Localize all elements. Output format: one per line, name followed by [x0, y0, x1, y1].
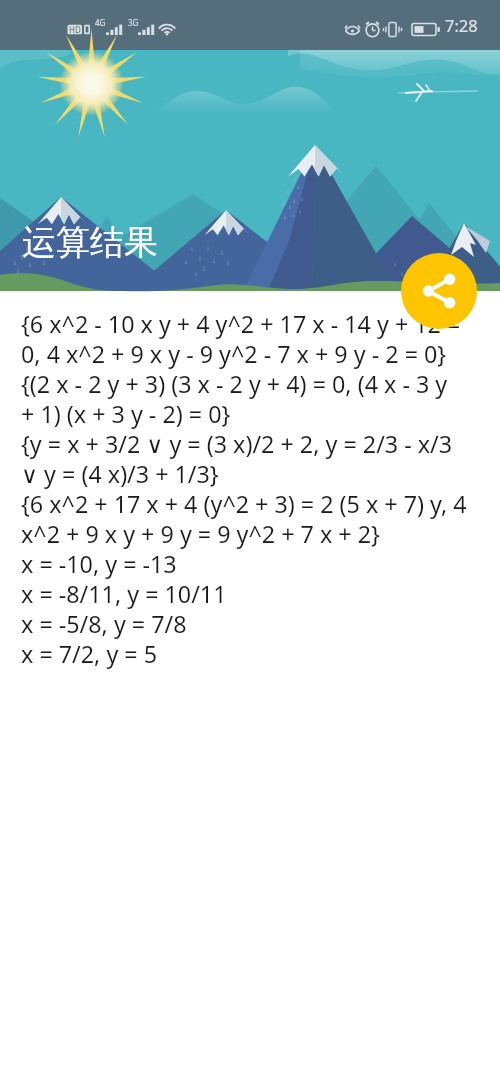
staticText: 7:28	[445, 14, 478, 36]
staticText: 运算结果	[22, 221, 158, 264]
staticText: {6 x^2 - 10 x y + 4 y^2 + 17 x - 14 y + …	[21, 308, 467, 669]
button[interactable]: Share	[401, 253, 477, 329]
staticText: 3G	[128, 17, 139, 28]
staticText: 4G	[95, 17, 106, 28]
staticText: HD	[69, 24, 81, 35]
